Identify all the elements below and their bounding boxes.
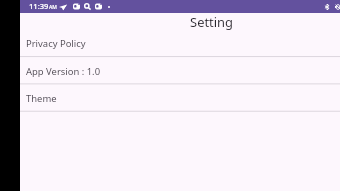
other: Search xyxy=(84,3,91,10)
staticText: Privacy Policy xyxy=(26,37,86,50)
staticText: Setting xyxy=(190,13,233,30)
other: Vibrate xyxy=(335,4,340,10)
staticText: 11:39 xyxy=(29,1,49,11)
other: Bluetooth xyxy=(324,4,330,10)
other: Messaging xyxy=(59,3,67,11)
staticText: Theme xyxy=(26,92,57,105)
button[interactable]: Theme xyxy=(20,84,340,111)
staticText: AM xyxy=(49,4,57,11)
staticText: App Version : 1.0 xyxy=(26,65,101,78)
button[interactable]: App Version : 1.0 xyxy=(20,57,340,84)
button[interactable]: Privacy Policy xyxy=(20,29,340,56)
